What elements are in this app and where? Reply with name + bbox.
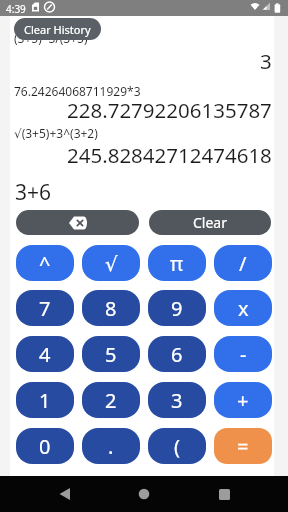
button[interactable]: 1 xyxy=(16,382,74,418)
button[interactable]: - xyxy=(214,336,272,372)
button[interactable]: = xyxy=(214,428,272,464)
staticText: 0 xyxy=(39,433,51,460)
button[interactable] xyxy=(16,210,139,235)
staticText: / xyxy=(239,250,247,277)
staticText: 4:39 xyxy=(6,2,26,16)
button[interactable]: π xyxy=(148,245,206,281)
staticText: ( xyxy=(174,433,180,460)
staticText: Clear History xyxy=(24,22,91,37)
button[interactable]: 7 xyxy=(16,290,74,326)
button[interactable]: 4 xyxy=(16,336,74,372)
staticText: 4 xyxy=(39,341,51,368)
button[interactable]: 0 xyxy=(16,428,74,464)
button[interactable] xyxy=(124,476,164,512)
staticText: 245.82842712474618 xyxy=(67,141,272,169)
button[interactable] xyxy=(44,476,84,512)
staticText: 6 xyxy=(171,341,183,368)
button[interactable]: . xyxy=(82,428,140,464)
button[interactable]: √ xyxy=(82,245,140,281)
button[interactable]: ^ xyxy=(16,245,74,281)
button[interactable]: Clear xyxy=(149,210,271,235)
staticText: = xyxy=(237,433,249,460)
button[interactable]: / xyxy=(214,245,272,281)
staticText: 76.24264068711929*3 xyxy=(14,83,141,99)
staticText: 9 xyxy=(171,295,183,322)
button[interactable]: ( xyxy=(148,428,206,464)
staticText: - xyxy=(240,341,247,368)
staticText: 3+6 xyxy=(15,178,52,207)
staticText: Clear xyxy=(193,213,227,232)
staticText: 3 xyxy=(171,387,183,414)
staticText: . xyxy=(108,433,114,460)
button[interactable]: Clear History xyxy=(14,18,101,40)
button[interactable]: x xyxy=(214,290,272,326)
staticText: √ xyxy=(105,252,118,275)
button[interactable]: 8 xyxy=(82,290,140,326)
button[interactable]: 3 xyxy=(148,382,206,418)
staticText: + xyxy=(237,387,249,414)
button[interactable]: 9 xyxy=(148,290,206,326)
button[interactable]: 6 xyxy=(148,336,206,372)
staticText: 2 xyxy=(105,387,117,414)
staticText: 1 xyxy=(39,387,51,414)
staticText: 7 xyxy=(39,295,51,322)
button[interactable]: + xyxy=(214,382,272,418)
button[interactable]: 5 xyxy=(82,336,140,372)
staticText: √(3+5)+3^(3+2) xyxy=(14,125,98,141)
button[interactable]: 2 xyxy=(82,382,140,418)
staticText: (3+5)*3/(3+5) xyxy=(14,30,88,46)
staticText: 5 xyxy=(105,341,117,368)
staticText: π xyxy=(170,250,184,277)
staticText: ^ xyxy=(39,250,51,277)
staticText: x xyxy=(238,295,249,322)
button[interactable] xyxy=(204,476,244,512)
staticText: 8 xyxy=(105,295,117,322)
staticText: 3 xyxy=(260,47,272,75)
staticText: 228.72792206135787 xyxy=(67,96,272,124)
